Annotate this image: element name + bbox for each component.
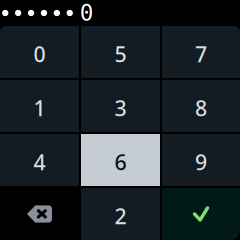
button[interactable]: 1 bbox=[0, 80, 79, 132]
staticText: 3 bbox=[114, 94, 126, 122]
staticText: 0 bbox=[33, 40, 45, 68]
staticText: 8 bbox=[195, 94, 207, 122]
staticText: 1 bbox=[33, 94, 45, 122]
button[interactable]: 8 bbox=[162, 80, 240, 132]
button[interactable]: 5 bbox=[81, 26, 160, 78]
button[interactable]: 6 bbox=[81, 134, 160, 186]
button[interactable]: Delete bbox=[0, 188, 79, 240]
button[interactable]: 3 bbox=[81, 80, 160, 132]
button[interactable]: 4 bbox=[0, 134, 79, 186]
button[interactable]: 0 bbox=[0, 26, 79, 78]
staticText: 6 bbox=[114, 148, 126, 176]
staticText: 0 bbox=[80, 0, 94, 26]
staticText: 4 bbox=[33, 148, 45, 176]
button[interactable]: Confirm bbox=[162, 188, 240, 240]
staticText: 7 bbox=[195, 40, 207, 68]
staticText: 9 bbox=[195, 148, 207, 176]
button[interactable]: 7 bbox=[162, 26, 240, 78]
button[interactable]: 9 bbox=[162, 134, 240, 186]
button[interactable]: 2 bbox=[81, 188, 160, 240]
staticText: 2 bbox=[114, 202, 126, 230]
staticText: 5 bbox=[114, 40, 126, 68]
